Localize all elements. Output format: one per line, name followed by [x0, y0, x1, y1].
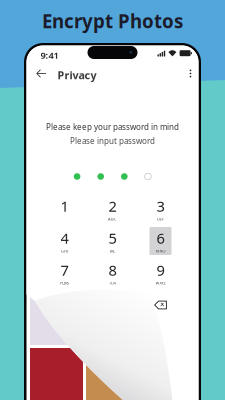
staticText: 6: [156, 228, 164, 248]
staticText: Encrypt Photos: [42, 9, 183, 33]
staticText: 3: [156, 196, 164, 216]
staticText: ABC: [108, 216, 117, 222]
staticText: TUV: [109, 280, 116, 286]
button[interactable]: 1: [40, 196, 88, 221]
button[interactable]: More options: [182, 63, 198, 83]
button[interactable]: 5: [88, 228, 136, 253]
button[interactable]: Back: [31, 63, 51, 83]
staticText: DEF: [157, 216, 164, 222]
button[interactable]: 6: [136, 228, 184, 253]
button[interactable]: 7: [40, 260, 88, 285]
staticText: GHI: [61, 248, 68, 254]
staticText: ×: [160, 299, 165, 310]
staticText: WXYZ: [155, 280, 165, 286]
staticText: MNO: [155, 248, 165, 254]
button[interactable]: 3: [136, 196, 184, 221]
button[interactable]: 8: [88, 260, 136, 285]
staticText: Please input password: [70, 135, 155, 146]
staticText: 9: [156, 260, 164, 280]
button[interactable]: Delete: [136, 292, 184, 317]
staticText: 8: [108, 260, 116, 280]
staticText: 9:41: [40, 49, 58, 61]
staticText: 5: [108, 228, 116, 248]
staticText: JKL: [110, 248, 115, 254]
staticText: 2: [108, 196, 116, 216]
button[interactable]: 9: [136, 260, 184, 285]
staticText: 1: [60, 196, 68, 216]
button[interactable]: 4: [40, 228, 88, 253]
staticText: Please keep your password in mind: [46, 121, 179, 132]
staticText: 7: [60, 260, 68, 280]
staticText: PQRS: [60, 280, 69, 286]
button[interactable]: 2: [88, 196, 136, 221]
staticText: Privacy: [57, 68, 96, 82]
staticText: 4: [60, 228, 68, 248]
